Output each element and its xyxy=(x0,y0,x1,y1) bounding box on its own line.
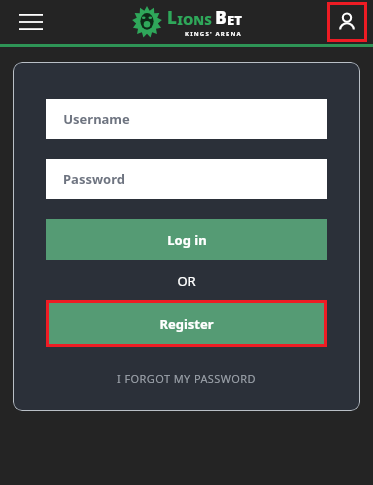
staticText: Password xyxy=(63,170,125,188)
button[interactable]: Register xyxy=(49,303,324,344)
staticText: ET xyxy=(227,11,242,29)
staticText: KINGS' ARENA xyxy=(185,30,242,38)
button[interactable]: Menu xyxy=(12,5,50,39)
button[interactable]: I FORGOT MY PASSWORD xyxy=(46,371,327,386)
staticText: IONS xyxy=(177,11,212,29)
staticText: B xyxy=(215,6,227,29)
staticText: Register xyxy=(159,315,214,333)
staticText: Username xyxy=(63,110,130,128)
button[interactable]: Username xyxy=(46,99,327,139)
staticText: L xyxy=(167,6,177,29)
staticText: Log in xyxy=(167,231,207,249)
button[interactable]: Password xyxy=(46,159,327,199)
staticText: I FORGOT MY PASSWORD xyxy=(117,371,256,386)
staticText: OR xyxy=(177,272,196,290)
button[interactable]: Account xyxy=(327,2,367,42)
button[interactable]: Log in xyxy=(46,219,327,260)
